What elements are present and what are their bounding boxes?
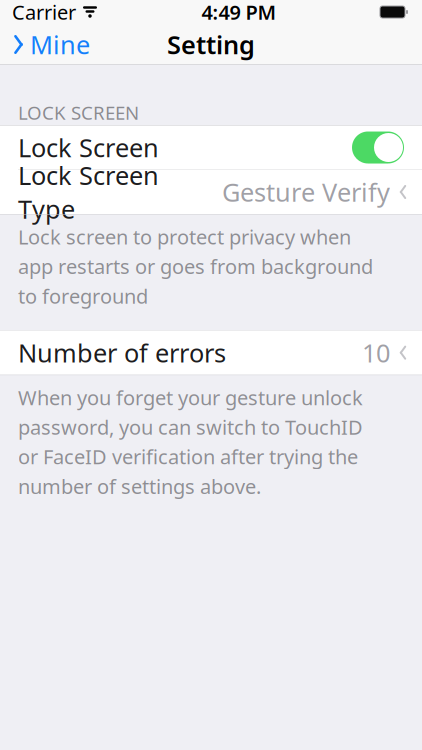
staticText: Gesture Verify bbox=[222, 175, 390, 209]
staticText: 4:49 PM bbox=[201, 0, 276, 25]
staticText: Number of errors bbox=[18, 336, 226, 369]
staticText: Lock screen to protect privacy when app … bbox=[18, 223, 373, 309]
button[interactable]: Number of errors bbox=[0, 331, 422, 375]
staticText: LOCK SCREEN bbox=[18, 100, 139, 125]
button[interactable]: Lock Screen Type bbox=[0, 170, 422, 214]
staticText: 10 bbox=[362, 336, 390, 369]
staticText: Carrier bbox=[12, 0, 76, 25]
staticText: Lock Screen bbox=[18, 131, 159, 164]
staticText: Mine bbox=[30, 28, 90, 61]
staticText: Lock Screen Type bbox=[18, 158, 159, 226]
staticText: When you forget your gesture unlock pass… bbox=[18, 384, 363, 499]
button[interactable]: Lock Screen toggle, on bbox=[352, 131, 404, 163]
button[interactable]: Mine bbox=[0, 24, 100, 64]
staticText: Setting bbox=[167, 28, 255, 61]
